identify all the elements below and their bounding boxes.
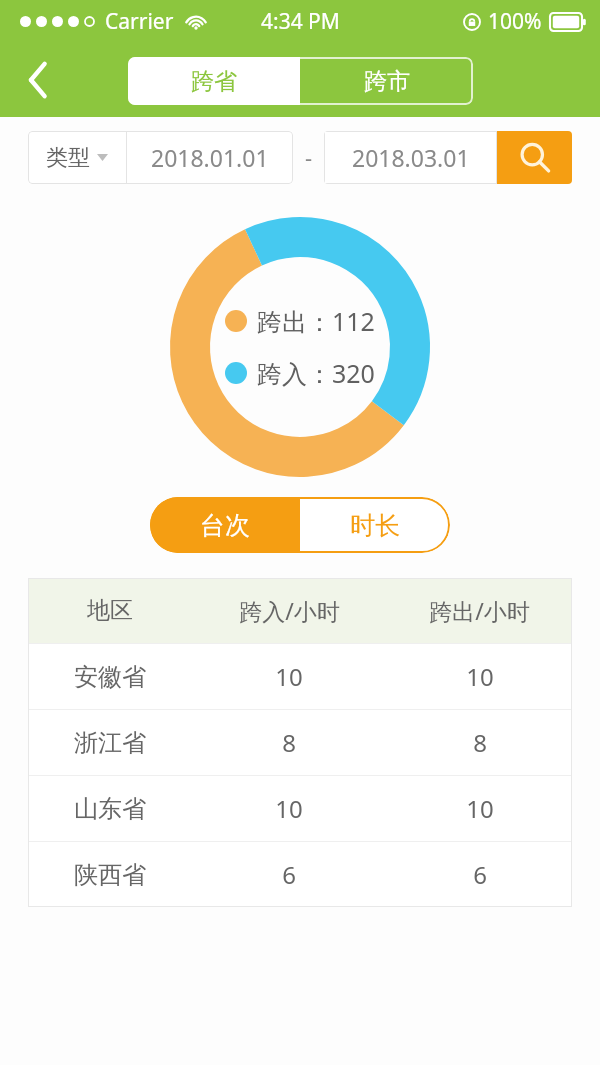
staticText: 陕西省 bbox=[74, 860, 146, 890]
staticText: 跨出/小时 bbox=[429, 595, 530, 626]
staticText: 时长 bbox=[350, 510, 400, 541]
button[interactable]: 山东省 bbox=[28, 776, 572, 841]
button[interactable]: 台次 bbox=[150, 497, 300, 553]
button[interactable]: 类型 bbox=[28, 131, 126, 184]
staticText: 6 bbox=[282, 858, 296, 891]
staticText: 浙江省 bbox=[74, 728, 146, 758]
staticText: 地区 bbox=[87, 596, 133, 625]
button[interactable]: 浙江省 bbox=[28, 710, 572, 775]
staticText: 100% bbox=[488, 7, 542, 36]
staticText: - bbox=[305, 142, 313, 172]
staticText: 10 bbox=[275, 792, 303, 825]
button[interactable]: 时长 bbox=[300, 497, 450, 553]
staticText: 跨入：320 bbox=[257, 356, 375, 390]
staticText: 8 bbox=[282, 726, 296, 759]
staticText: 跨市 bbox=[364, 67, 410, 96]
button[interactable]: 跨省 bbox=[128, 57, 300, 105]
button[interactable]: 跨市 bbox=[300, 57, 473, 105]
button[interactable]: Search bbox=[497, 131, 572, 184]
staticText: 跨省 bbox=[191, 67, 237, 96]
staticText: 安徽省 bbox=[74, 662, 146, 692]
staticText: 10 bbox=[466, 792, 494, 825]
staticText: 10 bbox=[466, 660, 494, 693]
button[interactable]: 安徽省 bbox=[28, 644, 572, 709]
staticText: 山东省 bbox=[74, 794, 146, 824]
staticText: 2018.03.01 bbox=[352, 142, 470, 173]
staticText: 跨入/小时 bbox=[239, 595, 340, 626]
staticText: 10 bbox=[275, 660, 303, 693]
staticText: 台次 bbox=[200, 510, 250, 541]
staticText: 跨出：112 bbox=[257, 304, 375, 338]
button[interactable]: 陕西省 bbox=[28, 842, 572, 907]
button[interactable]: 2018.01.01 bbox=[127, 131, 293, 184]
staticText: 类型 bbox=[46, 144, 90, 172]
button[interactable]: 2018.03.01 bbox=[324, 131, 497, 184]
button[interactable]: Back bbox=[0, 42, 76, 117]
staticText: Carrier bbox=[105, 7, 174, 36]
staticText: 4:34 PM bbox=[261, 7, 340, 36]
staticText: 8 bbox=[473, 726, 487, 759]
staticText: 6 bbox=[473, 858, 487, 891]
staticText: 2018.01.01 bbox=[151, 142, 269, 173]
